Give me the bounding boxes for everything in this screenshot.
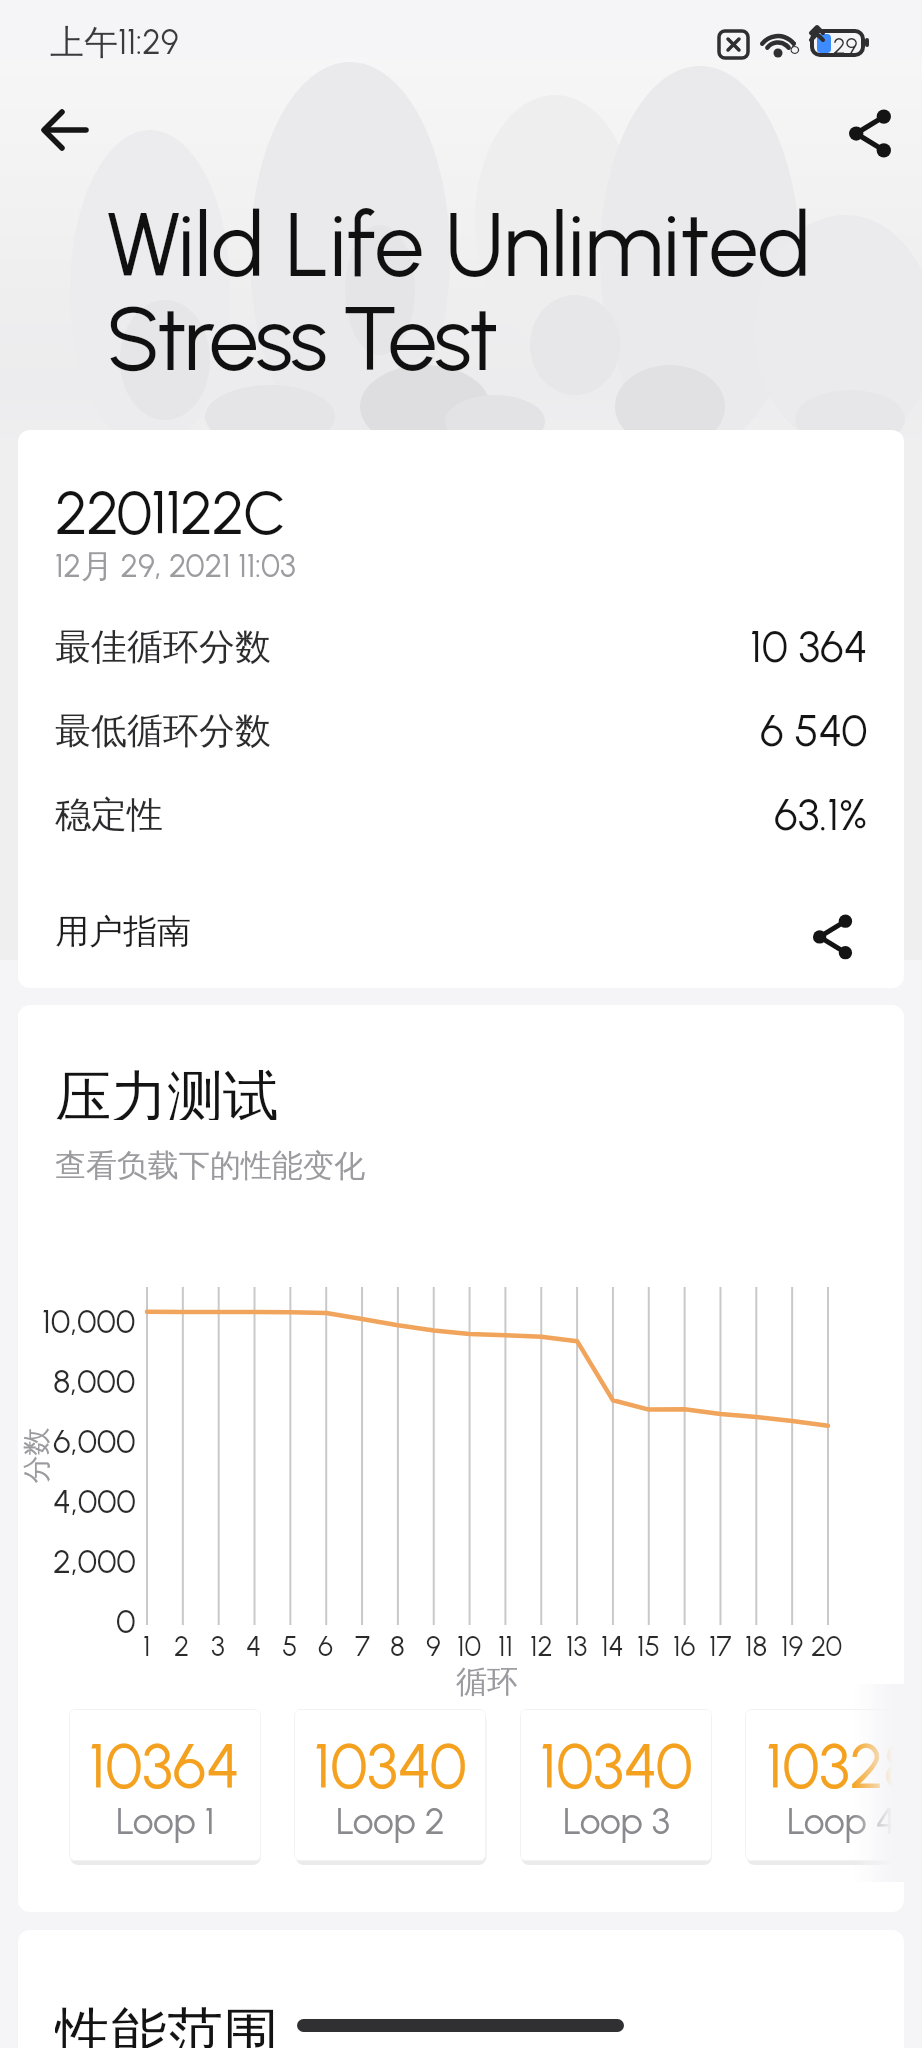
button[interactable] bbox=[520, 1709, 712, 1861]
staticText: Loop 4 bbox=[787, 1799, 896, 1843]
staticText: 6,000 bbox=[53, 1422, 136, 1462]
staticText: 用户指南 bbox=[55, 910, 191, 953]
staticText: 最低循环分数 bbox=[55, 708, 271, 753]
staticText: 10328 bbox=[766, 1729, 917, 1789]
staticText: 性能范围 bbox=[55, 1999, 279, 2048]
button[interactable]: 用户指南 bbox=[55, 906, 355, 956]
staticText: 10364 bbox=[89, 1729, 241, 1789]
staticText: 11 bbox=[498, 1629, 513, 1663]
staticText: 20 bbox=[811, 1629, 843, 1663]
button[interactable] bbox=[840, 101, 900, 161]
staticText: 10340 bbox=[540, 1729, 693, 1789]
staticText: 循环 bbox=[456, 1662, 518, 1701]
staticText: 查看负载下的性能变化 bbox=[55, 1146, 365, 1185]
staticText: 10 bbox=[457, 1629, 482, 1663]
staticText: 15 bbox=[637, 1629, 660, 1663]
staticText: 最佳循环分数 bbox=[55, 624, 271, 669]
staticText: 稳定性 bbox=[55, 792, 163, 837]
staticText: 14 bbox=[601, 1629, 624, 1663]
staticText: 上午11:29 bbox=[50, 21, 179, 61]
staticText: 7 bbox=[355, 1629, 370, 1663]
staticText: 5 bbox=[282, 1629, 298, 1663]
button[interactable] bbox=[294, 1709, 486, 1861]
staticText: 12 bbox=[530, 1629, 553, 1663]
staticText: Loop 3 bbox=[563, 1799, 670, 1843]
staticText: 2,000 bbox=[53, 1542, 136, 1582]
staticText: Loop 1 bbox=[116, 1799, 215, 1843]
staticText: 压力测试 bbox=[55, 1062, 279, 1120]
staticText: 4,000 bbox=[53, 1482, 136, 1522]
staticText: Wild Life Unlimited bbox=[106, 191, 811, 285]
staticText: Loop 2 bbox=[336, 1799, 445, 1843]
staticText: 16 bbox=[673, 1629, 696, 1663]
staticText: 0 bbox=[116, 1602, 136, 1642]
staticText: 9 bbox=[426, 1629, 441, 1663]
button[interactable] bbox=[40, 106, 88, 154]
staticText: 8,000 bbox=[53, 1362, 136, 1402]
staticText: 4 bbox=[246, 1629, 262, 1663]
button[interactable] bbox=[745, 1709, 922, 1861]
staticText: 3 bbox=[211, 1629, 225, 1663]
staticText: 10 364 bbox=[750, 620, 868, 673]
staticText: 2201122C bbox=[55, 476, 285, 536]
staticText: 10,000 bbox=[42, 1302, 136, 1342]
staticText: 12月 29, 2021 11:03 bbox=[55, 546, 296, 586]
staticText: 63.1% bbox=[774, 788, 868, 841]
staticText: 分数 bbox=[18, 1427, 53, 1483]
button[interactable] bbox=[798, 903, 868, 967]
staticText: 17 bbox=[709, 1629, 732, 1663]
staticText: 8 bbox=[390, 1629, 405, 1663]
staticText: 19 bbox=[781, 1629, 804, 1663]
staticText: 1 bbox=[143, 1629, 151, 1663]
staticText: 29 bbox=[833, 32, 858, 57]
staticText: 6 540 bbox=[760, 704, 868, 757]
button[interactable] bbox=[69, 1709, 261, 1861]
staticText: 6 bbox=[790, 37, 800, 59]
staticText: 13 bbox=[566, 1629, 588, 1663]
staticText: 18 bbox=[745, 1629, 768, 1663]
staticText: 10340 bbox=[314, 1729, 467, 1789]
staticText: 6 bbox=[318, 1629, 334, 1663]
staticText: Stress Test bbox=[106, 285, 496, 379]
staticText: 2 bbox=[174, 1629, 190, 1663]
